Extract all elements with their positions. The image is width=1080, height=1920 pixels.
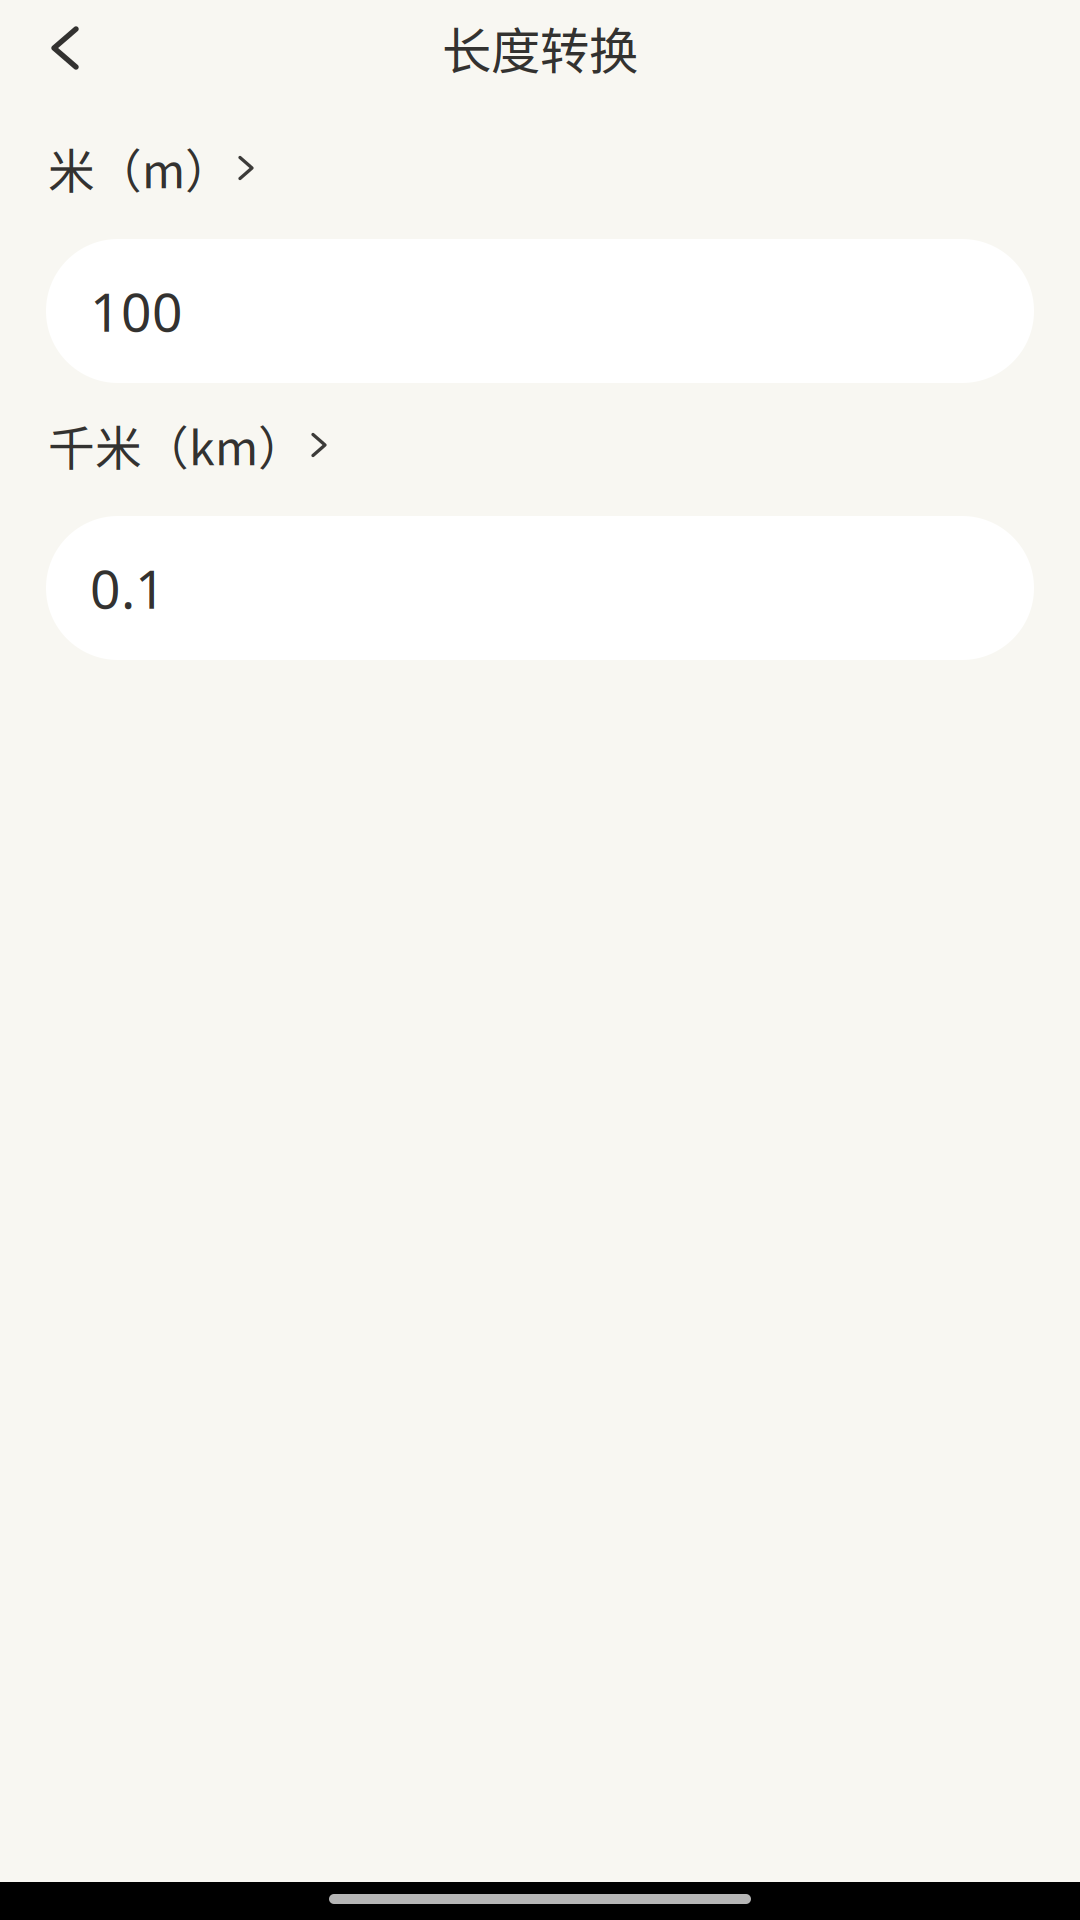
button[interactable]: Back xyxy=(21,2,109,98)
staticText: 米（m） xyxy=(48,134,232,202)
staticText: 0.1 xyxy=(90,553,166,623)
staticText: 千米（km） xyxy=(48,411,305,479)
button[interactable]: 0.1 xyxy=(46,516,1034,660)
staticText: 长度转换 xyxy=(442,12,638,83)
button[interactable]: 千米（km） xyxy=(0,417,1080,473)
staticText: 100 xyxy=(90,276,183,346)
button[interactable]: 100 xyxy=(46,239,1034,383)
button[interactable]: 米（m） xyxy=(0,140,1080,196)
